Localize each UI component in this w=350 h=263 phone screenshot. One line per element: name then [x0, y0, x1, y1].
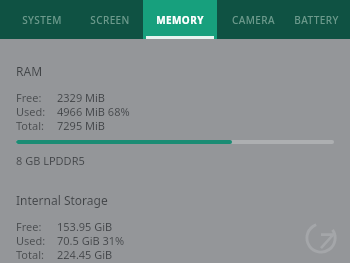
staticText: Used: — [16, 104, 46, 118]
staticText: BATTERY — [294, 13, 339, 27]
staticText: CAMERA — [232, 13, 275, 27]
staticText: 7295 MiB — [57, 118, 105, 132]
staticText: SYSTEM — [22, 13, 62, 27]
staticText: 4966 MiB 68% — [57, 104, 130, 118]
staticText: 2329 MiB — [57, 90, 105, 104]
staticText: Internal Storage — [16, 192, 108, 208]
other: App logo watermark — [304, 221, 338, 255]
staticText: SCREEN — [90, 13, 130, 27]
button[interactable]: SYSTEM — [6, 0, 78, 39]
staticText: Total: — [16, 118, 44, 132]
staticText: 8 GB LPDDR5 — [16, 153, 85, 168]
staticText: 153.95 GiB — [57, 219, 113, 233]
staticText: Used: — [16, 233, 46, 247]
staticText: MEMORY — [156, 13, 204, 27]
staticText: Free: — [16, 219, 42, 233]
staticText: 224.45 GiB — [57, 247, 113, 261]
staticText: 70.5 GiB 31% — [57, 233, 125, 247]
button[interactable]: MEMORY — [143, 0, 217, 39]
staticText: Total: — [16, 247, 44, 261]
staticText: RAM — [16, 63, 43, 79]
button[interactable]: BATTERY — [282, 0, 350, 39]
staticText: Free: — [16, 90, 42, 104]
button[interactable]: SCREEN — [76, 0, 144, 39]
button[interactable]: CAMERA — [218, 0, 288, 39]
